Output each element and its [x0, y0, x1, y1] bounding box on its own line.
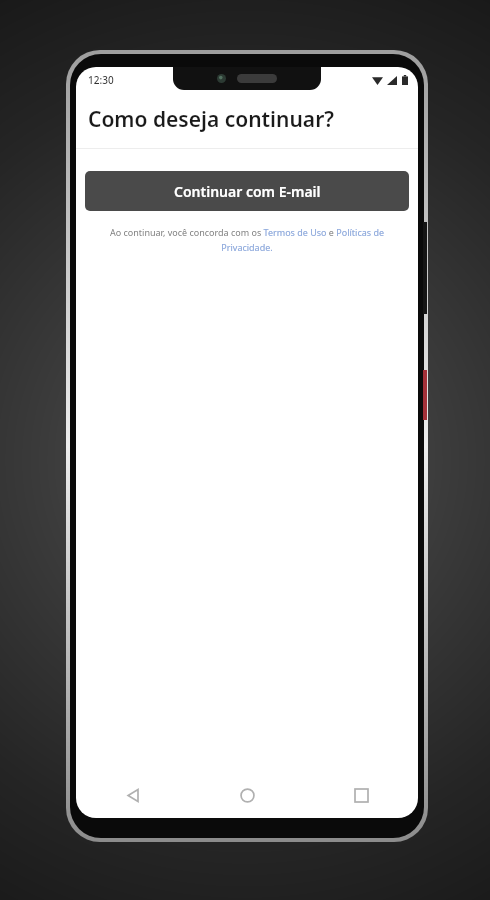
staticText: Como deseja continuar? — [88, 105, 334, 134]
staticText: Continuar com E-mail — [174, 182, 321, 201]
button[interactable]: Home — [190, 772, 304, 818]
button[interactable]: Recent apps — [304, 772, 418, 818]
button[interactable]: Continuar com E-mail — [85, 171, 409, 211]
button[interactable]: Back — [76, 772, 190, 818]
button[interactable]: Ao continuar, você concorda com os Termo… — [96, 226, 398, 253]
staticText: 12:30 — [88, 73, 114, 87]
